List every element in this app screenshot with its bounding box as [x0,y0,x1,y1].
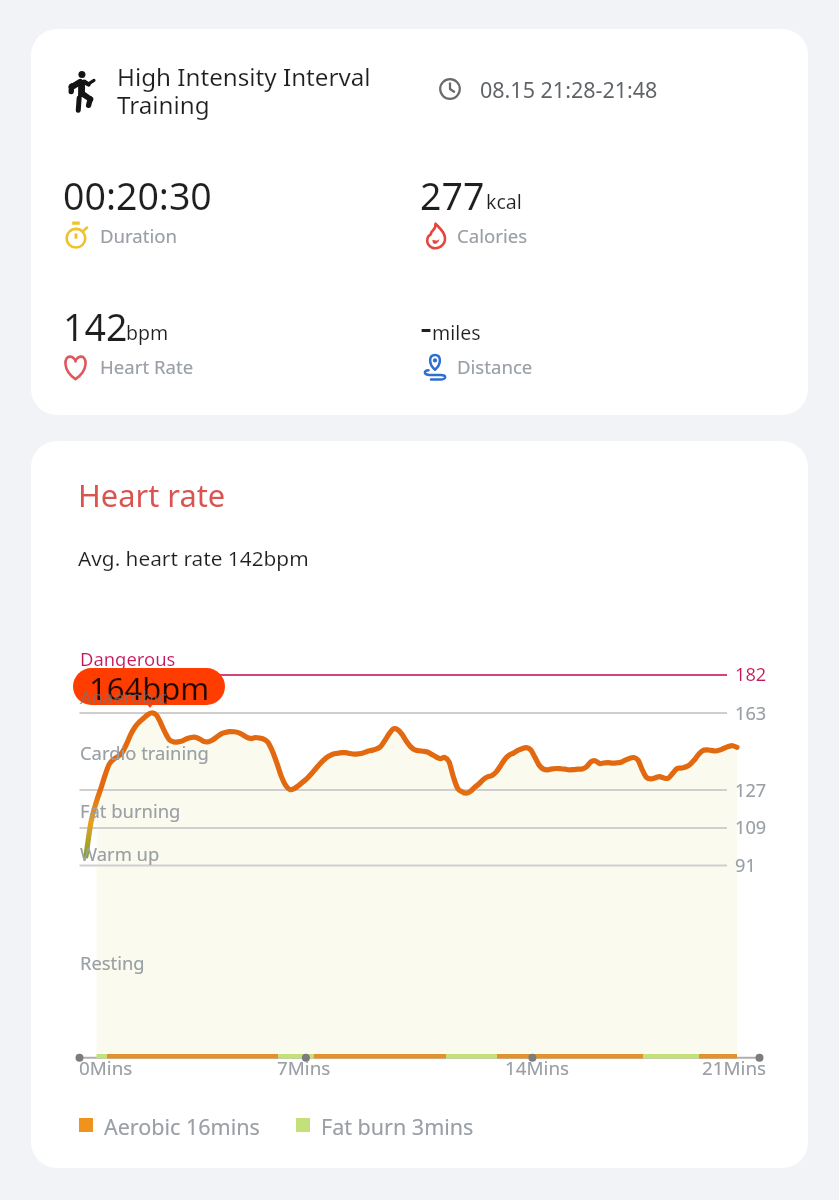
staticText: Avg. heart rate 142bpm [78,544,309,572]
button[interactable]: 277 [419,170,759,265]
staticText: bpm [126,319,169,346]
staticText: Warm up [80,841,160,866]
staticText: 08.15 21:28-21:48 [480,75,658,104]
button[interactable]: - [419,301,759,396]
staticText: Anaerobic [80,684,168,709]
other: Running workout [64,63,101,112]
staticText: Duration [100,223,178,248]
button[interactable]: 164bpm [73,668,225,705]
staticText: Heart Rate [100,354,194,379]
button[interactable]: 142 [62,301,402,396]
staticText: 277 [420,170,485,221]
staticText: Fat burning [80,798,181,823]
button[interactable]: Running workout [31,29,808,415]
staticText: Fat burn 3mins [321,1112,474,1141]
staticText: 00:20:30 [63,170,212,221]
staticText: 182 [735,662,767,687]
button[interactable]: 00:20:30 [62,170,402,265]
staticText: kcal [486,188,522,215]
staticText: 91 [735,853,756,878]
staticText: - [420,301,433,352]
staticText: 0Mins [79,1055,133,1081]
staticText: Distance [457,354,533,379]
staticText: 7Mins [277,1055,331,1081]
staticText: 163 [735,701,767,726]
staticText: High Intensity Interval Training [117,60,371,121]
staticText: Cardio training [80,740,209,765]
staticText: Resting [80,950,145,975]
staticText: Calories [457,223,528,248]
button[interactable]: Heart rate [31,441,808,1168]
staticText: 127 [735,778,767,803]
staticText: miles [432,319,481,346]
staticText: 142 [63,301,128,352]
staticText: 14Mins [505,1055,570,1081]
staticText: Aerobic 16mins [104,1112,260,1141]
staticText: 109 [735,815,767,840]
staticText: Dangerous [80,646,176,671]
staticText: Heart rate [78,474,226,516]
staticText: 21Mins [702,1055,767,1081]
staticText: 164bpm [89,668,210,704]
